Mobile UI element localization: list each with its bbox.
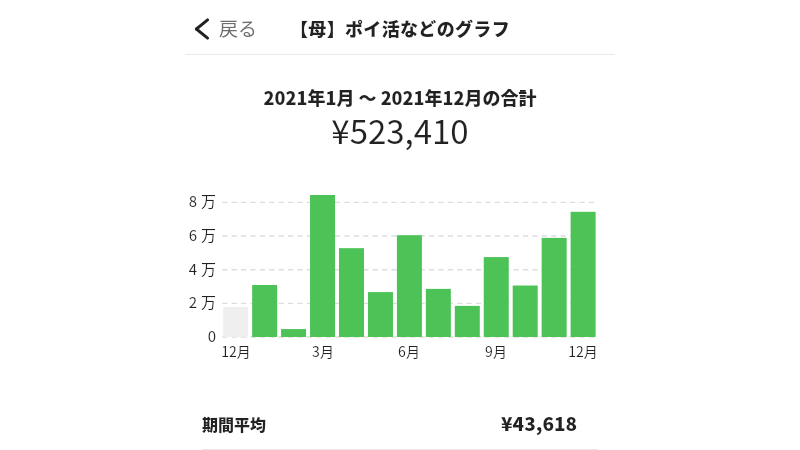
staticText: 4 万 [185,258,216,280]
button[interactable]: 期間平均 [185,409,615,449]
staticText: 6 万 [185,224,216,246]
staticText: 12月 [206,341,266,361]
staticText: ¥43,618 [501,409,578,437]
staticText: 2021年1月 〜 2021年12月の合計 [185,84,615,110]
staticText: 0 [185,325,216,347]
staticText: 【母】ポイ活などのグラフ [290,15,510,41]
staticText: 戻る [219,14,258,42]
staticText: ¥523,410 [185,106,615,154]
staticText: 8 万 [185,190,216,212]
staticText: 9月 [466,341,526,361]
staticText: 期間平均 [202,412,267,435]
button[interactable]: 戻る [185,6,268,50]
staticText: 6月 [379,341,439,361]
staticText: 12月 [553,341,613,361]
staticText: 3月 [293,341,353,361]
staticText: 2 万 [185,291,216,313]
